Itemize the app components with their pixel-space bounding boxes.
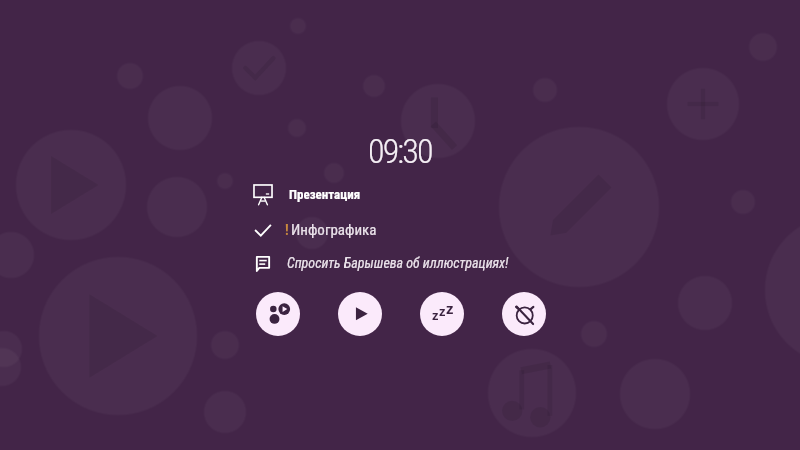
staticText: Инфографика [291,221,377,239]
button[interactable]: Dismiss alarm [502,292,546,336]
button[interactable]: Play [338,292,382,336]
staticText: Спросить Барышева об иллюстрациях! [287,255,509,271]
staticText: z [439,302,446,320]
staticText: 09:30 [368,131,432,171]
staticText: z [432,306,439,324]
staticText: z [446,298,454,318]
button[interactable]: Slideshow [256,292,300,336]
button[interactable]: Snooze [420,292,464,336]
staticText: ! [285,222,289,238]
staticText: Презентация [289,187,361,202]
